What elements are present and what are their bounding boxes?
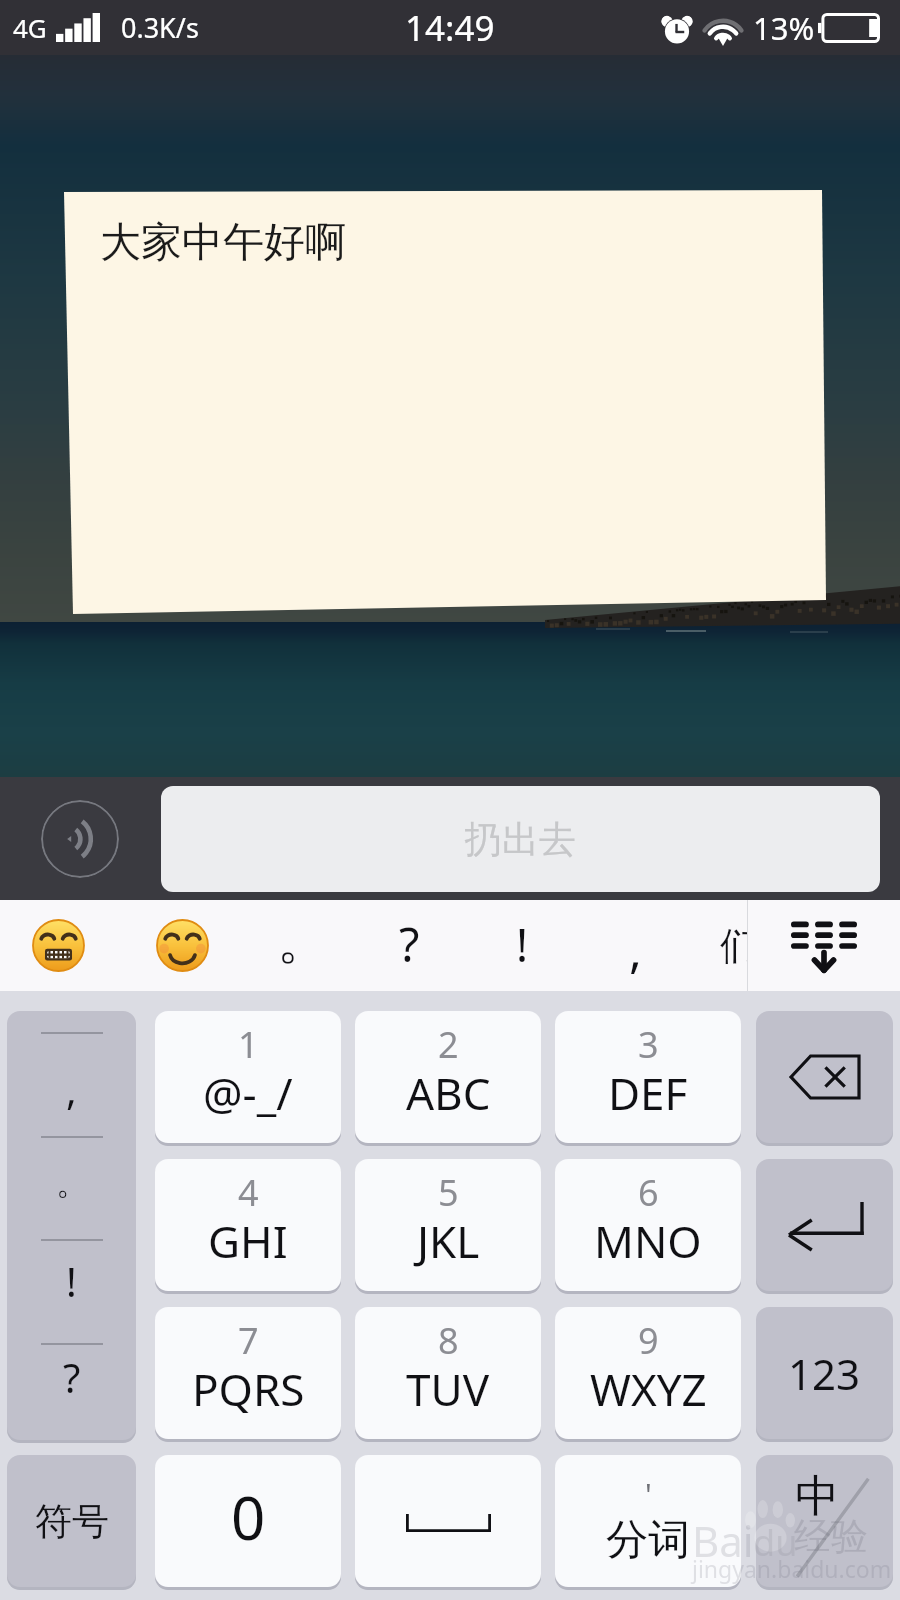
button[interactable]: 们 [690,900,747,991]
staticText: 经验 [794,1513,868,1560]
button[interactable] [8,900,108,991]
staticText: 符号 [35,1498,109,1545]
button[interactable]: 2 [355,1011,541,1143]
staticText: @-_/ [203,1063,293,1123]
staticText: Bai [692,1512,754,1569]
staticText: DEF [608,1063,688,1123]
staticText: 4 [238,1168,259,1217]
staticText: 扔出去 [465,816,576,863]
staticText: 们 [720,922,747,970]
staticText: ABC [406,1063,491,1123]
staticText: ? [399,912,420,976]
staticText: 大家中午好啊 [100,217,346,269]
button[interactable]: Voice input [41,800,119,878]
staticText: 中 [795,1469,839,1524]
staticText: ! [66,1254,77,1308]
staticText: jingyan.baidu.com [692,1553,892,1584]
button[interactable]: , [575,900,695,991]
button[interactable]: 9 [555,1307,741,1439]
staticText: JKL [417,1211,480,1271]
staticText: 8 [438,1316,459,1365]
staticText: 2 [438,1020,459,1069]
staticText: 6 [638,1168,659,1217]
button[interactable]: 5 [355,1159,541,1291]
button[interactable]: 8 [355,1307,541,1439]
staticText: 14:49 [405,4,495,52]
staticText: 4G [13,10,47,45]
staticText: TUV [406,1359,490,1419]
staticText: 0 [231,1476,266,1558]
staticText: du [753,1518,798,1567]
button[interactable]: 0 [155,1455,341,1587]
button[interactable]: 扔出去 [161,786,880,892]
staticText: 9 [638,1316,659,1365]
button[interactable]: Hide keyboard [748,900,900,991]
staticText: 分词 [606,1514,690,1567]
staticText: PQRS [192,1359,305,1419]
button[interactable]: ? [349,900,469,991]
button[interactable]: Backspace [756,1011,893,1143]
staticText: , [66,1062,77,1116]
button[interactable]: Space [355,1455,541,1587]
button[interactable] [132,900,232,991]
staticText: ? [63,1350,81,1404]
staticText: ! [516,914,529,975]
staticText: WXYZ [590,1359,707,1419]
staticText: 5 [438,1168,459,1217]
staticText: 3 [638,1020,659,1069]
staticText: 13% [753,7,815,49]
button[interactable]: 3 [555,1011,741,1143]
staticText: GHI [208,1211,288,1271]
staticText: MNO [594,1211,702,1271]
button[interactable]: 6 [555,1159,741,1291]
button[interactable]: ! [462,900,582,991]
button[interactable]: 。 [243,900,363,991]
staticText: , [629,917,642,982]
staticText: 0.3K/s [121,9,199,46]
button[interactable]: 7 [155,1307,341,1439]
staticText: 。 [277,908,329,974]
staticText: 7 [238,1316,259,1365]
staticText: 1 [238,1020,259,1069]
staticText: 123 [788,1345,861,1402]
button[interactable]: 123 [756,1307,893,1439]
button[interactable]: 1 [155,1011,341,1143]
button[interactable]: Enter [756,1159,893,1291]
button[interactable]: 4 [155,1159,341,1291]
button[interactable]: 符号 [7,1455,136,1587]
button[interactable]: , [7,1011,136,1440]
button[interactable]: ' [555,1455,741,1587]
button[interactable]: Switch language [756,1455,893,1587]
staticText: ' [645,1474,652,1515]
staticText: 。 [56,1163,88,1203]
